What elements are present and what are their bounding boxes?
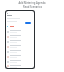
button[interactable] bbox=[6, 29, 34, 34]
button[interactable] bbox=[7, 26, 34, 27]
staticText: Read Scenarios bbox=[23, 5, 42, 9]
button[interactable] bbox=[6, 44, 34, 49]
button[interactable] bbox=[25, 22, 31, 24]
button[interactable] bbox=[6, 39, 34, 44]
button[interactable] bbox=[6, 34, 34, 39]
button[interactable] bbox=[6, 49, 34, 54]
button[interactable] bbox=[6, 64, 34, 68]
button[interactable] bbox=[6, 59, 34, 64]
button[interactable] bbox=[6, 54, 34, 59]
staticText: Add Metering Agenda bbox=[18, 1, 46, 5]
